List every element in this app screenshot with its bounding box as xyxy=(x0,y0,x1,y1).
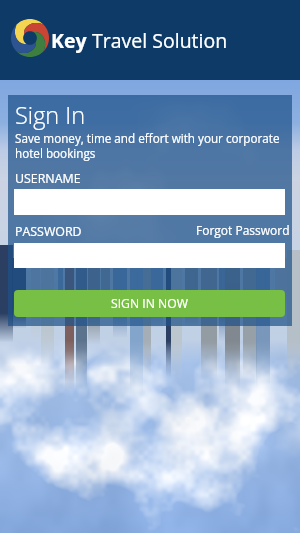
staticText: USERNAME xyxy=(15,170,81,187)
button[interactable]: Forgot Password xyxy=(196,222,290,238)
staticText: Travel Solution xyxy=(87,27,228,54)
staticText: Key xyxy=(51,27,87,54)
button[interactable]: SIGN IN NOW xyxy=(14,290,285,317)
other: Key Travel Solution logo xyxy=(10,18,50,58)
staticText: Save money, time and effort with your co… xyxy=(15,130,285,161)
staticText: Sign In xyxy=(15,99,86,131)
staticText: PASSWORD xyxy=(15,223,82,240)
staticText: SIGN IN NOW xyxy=(111,295,188,312)
